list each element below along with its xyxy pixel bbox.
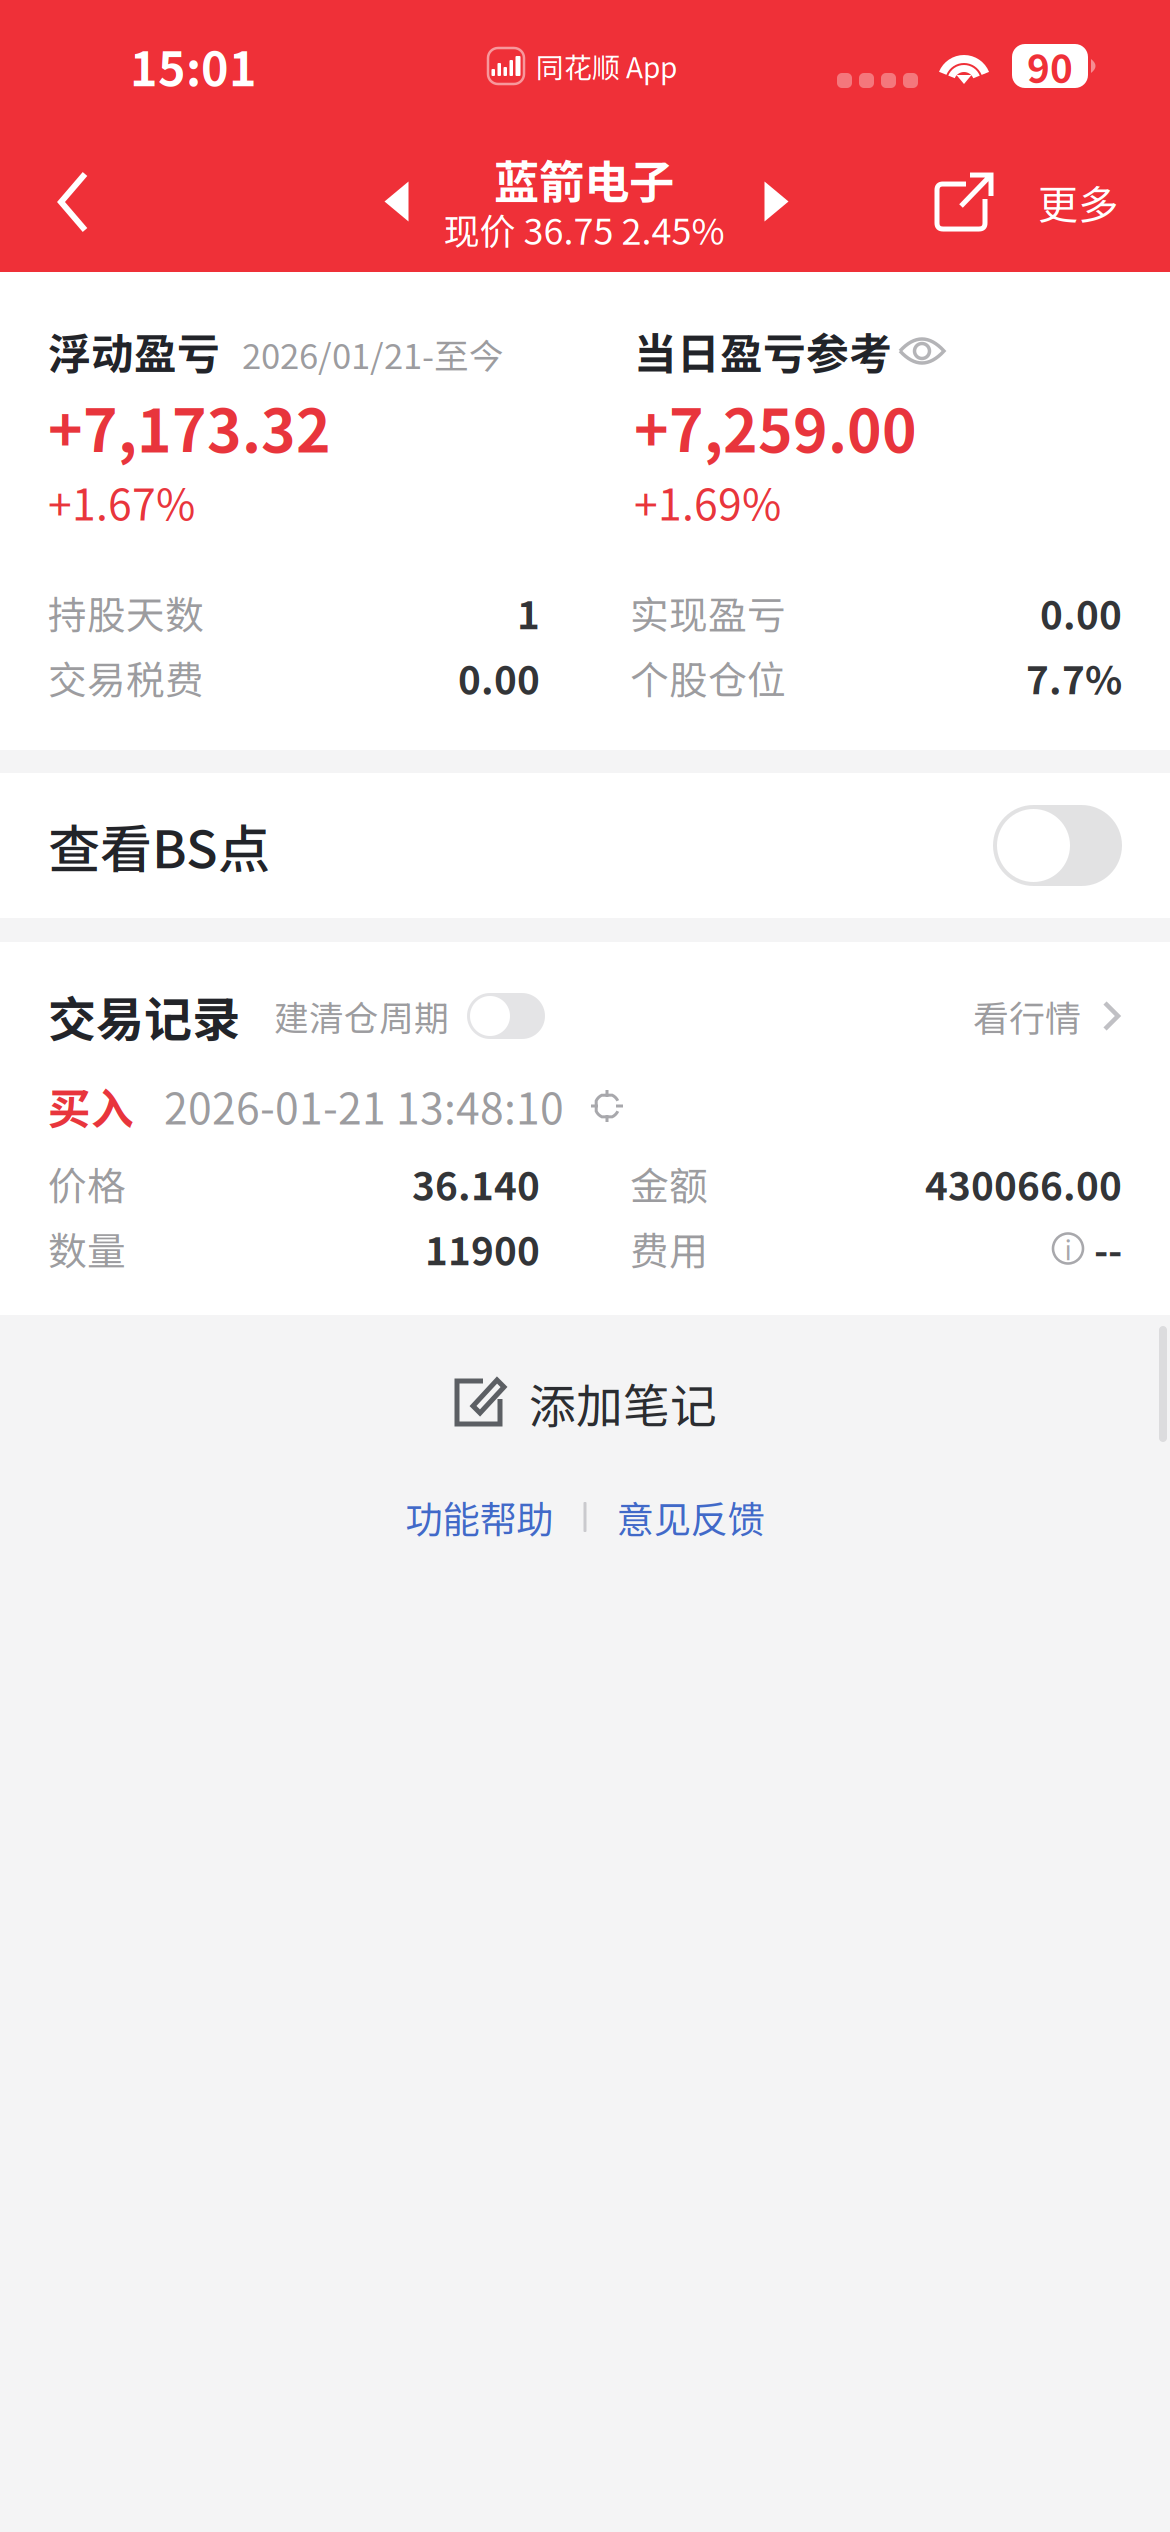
staticText: 36.140 bbox=[412, 1155, 540, 1211]
staticText: 蓝箭电子 bbox=[494, 146, 674, 212]
staticText: 价格 bbox=[48, 1155, 126, 1211]
staticText: +7,259.00 bbox=[634, 384, 917, 469]
staticText: 费用 bbox=[630, 1220, 708, 1276]
staticText: 建清仓周期 bbox=[274, 991, 449, 1041]
button[interactable]: Build and clear cycle bbox=[467, 993, 545, 1039]
staticText: +7,173.32 bbox=[48, 384, 331, 469]
staticText: 功能帮助 bbox=[405, 1490, 553, 1544]
staticText: 现价 36.75 2.45% bbox=[443, 203, 724, 255]
staticText: 7.7% bbox=[1026, 649, 1122, 705]
staticText: i bbox=[1064, 1229, 1071, 1268]
staticText: 交易记录 bbox=[48, 981, 240, 1051]
staticText: 11900 bbox=[425, 1220, 540, 1276]
staticText: 15:01 bbox=[130, 32, 257, 100]
button[interactable]: 意见反馈 bbox=[586, 1481, 794, 1553]
button[interactable]: 看行情 bbox=[973, 990, 1122, 1042]
button[interactable]: Previous stock bbox=[365, 132, 429, 272]
button[interactable]: Next stock bbox=[744, 132, 808, 272]
staticText: 数量 bbox=[48, 1220, 126, 1276]
staticText: -- bbox=[1094, 1220, 1122, 1276]
button[interactable]: 添加笔记 bbox=[453, 1343, 717, 1463]
button[interactable]: 更多 bbox=[1038, 132, 1118, 272]
staticText: 添加笔记 bbox=[529, 1369, 717, 1437]
staticText: 意见反馈 bbox=[616, 1490, 764, 1544]
staticText: 当日盈亏参考 bbox=[634, 320, 892, 382]
button[interactable]: Back bbox=[37, 132, 109, 272]
button[interactable]: 查看BS点 bbox=[0, 773, 1170, 918]
staticText: 持股天数 bbox=[48, 584, 204, 640]
staticText: 交易税费 bbox=[48, 649, 204, 705]
staticText: +1.67% bbox=[48, 471, 195, 533]
staticText: 买入 bbox=[48, 1075, 134, 1137]
staticText: 90 bbox=[1027, 38, 1073, 94]
button[interactable]: 功能帮助 bbox=[375, 1481, 583, 1553]
staticText: 同花顺 App bbox=[536, 46, 677, 86]
staticText: 看行情 bbox=[973, 990, 1081, 1042]
staticText: 查看BS点 bbox=[48, 808, 270, 883]
staticText: 0.00 bbox=[458, 649, 540, 705]
staticText: 金额 bbox=[630, 1155, 708, 1211]
staticText: 0.00 bbox=[1040, 584, 1122, 640]
staticText: 实现盈亏 bbox=[630, 584, 786, 640]
staticText: 个股仓位 bbox=[630, 649, 786, 705]
staticText: 430066.00 bbox=[925, 1155, 1122, 1211]
staticText: 浮动盈亏 bbox=[48, 320, 220, 382]
staticText: 2026-01-21 13:48:10 bbox=[164, 1075, 564, 1137]
button[interactable]: Share bbox=[933, 132, 995, 272]
staticText: 2026/01/21-至今 bbox=[242, 329, 504, 379]
staticText: +1.69% bbox=[634, 471, 781, 533]
staticText: 更多 bbox=[1038, 173, 1118, 231]
staticText: 1 bbox=[517, 584, 540, 640]
